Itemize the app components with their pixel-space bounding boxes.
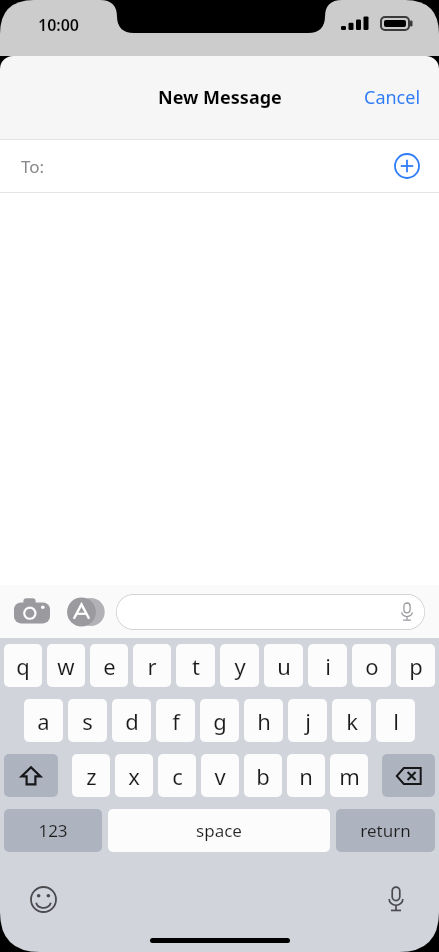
button[interactable]: q xyxy=(4,644,42,687)
staticText: e xyxy=(103,651,116,681)
staticText: w xyxy=(57,651,75,681)
staticText: z xyxy=(86,761,97,791)
staticText: i xyxy=(325,651,331,681)
button[interactable]: c xyxy=(158,754,196,797)
staticText: a xyxy=(37,706,50,736)
button[interactable]: 123 xyxy=(4,809,102,852)
button[interactable]: l xyxy=(376,699,415,742)
staticText: u xyxy=(277,651,291,681)
staticText: v xyxy=(214,761,226,791)
button[interactable]: w xyxy=(47,644,85,687)
button[interactable]: e xyxy=(90,644,128,687)
staticText: h xyxy=(257,706,271,736)
staticText: b xyxy=(256,761,270,791)
button[interactable]: x xyxy=(115,754,153,797)
staticText: p xyxy=(409,651,423,681)
staticText: k xyxy=(346,706,358,736)
staticText: o xyxy=(365,651,379,681)
staticText: g xyxy=(213,706,227,736)
staticText: r xyxy=(147,651,157,681)
button[interactable]: r xyxy=(133,644,171,687)
button[interactable]: Emoji xyxy=(26,882,60,916)
staticText: New Message xyxy=(158,85,282,110)
staticText: 10:00 xyxy=(38,14,80,36)
staticText: l xyxy=(393,706,399,736)
staticText: n xyxy=(299,761,313,791)
button[interactable]: h xyxy=(244,699,283,742)
staticText: m xyxy=(339,761,360,791)
button[interactable]: u xyxy=(264,644,303,687)
button[interactable]: i xyxy=(308,644,347,687)
button[interactable]: a xyxy=(24,699,63,742)
button[interactable]: m xyxy=(330,754,368,797)
button[interactable]: n xyxy=(287,754,325,797)
staticText: f xyxy=(172,706,180,736)
staticText: s xyxy=(82,706,93,736)
staticText: Cancel xyxy=(364,85,421,110)
button[interactable]: p xyxy=(396,644,435,687)
staticText: y xyxy=(234,651,246,681)
button[interactable]: s xyxy=(68,699,107,742)
button[interactable]: v xyxy=(201,754,239,797)
staticText: j xyxy=(305,706,311,736)
button[interactable]: j xyxy=(288,699,327,742)
staticText: d xyxy=(125,706,139,736)
button[interactable] xyxy=(116,594,425,630)
button[interactable]: return xyxy=(336,809,435,852)
button[interactable]: o xyxy=(352,644,391,687)
staticText: c xyxy=(172,761,183,791)
staticText: t xyxy=(192,651,200,681)
staticText: 123 xyxy=(38,819,68,842)
button[interactable]: t xyxy=(176,644,215,687)
button[interactable]: b xyxy=(244,754,282,797)
staticText: To: xyxy=(21,155,45,178)
button[interactable]: space xyxy=(108,809,330,852)
button[interactable]: f xyxy=(156,699,195,742)
button[interactable]: k xyxy=(332,699,371,742)
staticText: x xyxy=(128,761,140,791)
staticText: q xyxy=(16,651,30,681)
button[interactable]: Backspace xyxy=(382,754,435,797)
staticText: space xyxy=(196,819,242,842)
button[interactable]: Add contact xyxy=(389,148,425,184)
staticText: return xyxy=(360,819,411,842)
button[interactable]: y xyxy=(220,644,259,687)
button[interactable]: d xyxy=(112,699,151,742)
button[interactable]: Dictation xyxy=(379,882,413,916)
button[interactable]: Apps xyxy=(64,597,102,627)
button[interactable]: Camera xyxy=(14,597,50,627)
button[interactable]: Cancel xyxy=(346,73,439,122)
button[interactable]: Shift xyxy=(4,754,58,797)
button[interactable]: z xyxy=(72,754,110,797)
button[interactable]: g xyxy=(200,699,239,742)
